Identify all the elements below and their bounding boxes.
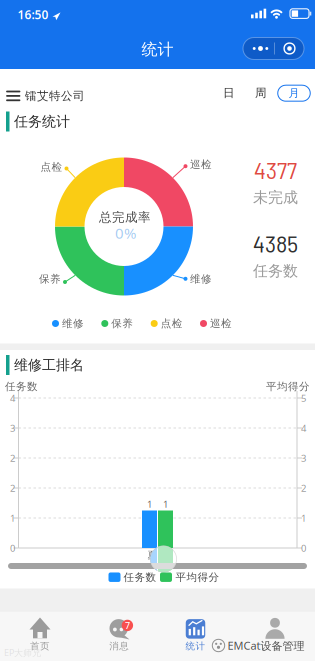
- staticText: EP大师兄: [4, 646, 41, 658]
- staticText: 0: [10, 542, 15, 554]
- staticText: 7: [125, 620, 130, 632]
- staticText: 点检: [40, 161, 62, 173]
- staticText: 巡检: [210, 317, 232, 330]
- staticText: 1: [163, 498, 168, 510]
- staticText: 保养: [39, 273, 61, 285]
- staticText: 未完成: [253, 188, 298, 207]
- staticText: 1: [147, 498, 152, 510]
- staticText: 消息: [109, 640, 129, 652]
- staticText: 0%: [115, 223, 136, 243]
- staticText: 维修: [62, 317, 84, 330]
- staticText: 0: [301, 542, 306, 554]
- staticText: EMCat设备管理: [227, 638, 304, 653]
- staticText: 镭艾特公司: [25, 89, 85, 103]
- staticText: 1: [10, 512, 15, 524]
- staticText: 16:50: [17, 6, 48, 22]
- staticText: 2: [10, 452, 15, 464]
- staticText: 周: [255, 86, 267, 100]
- staticText: 日: [223, 86, 235, 100]
- staticText: 4385: [253, 229, 298, 257]
- staticText: 任务数: [253, 262, 298, 280]
- staticText: 维修: [190, 273, 212, 285]
- staticText: 巡检: [190, 158, 212, 171]
- staticText: 5: [301, 392, 306, 404]
- staticText: 2: [301, 482, 306, 494]
- staticText: 1: [301, 512, 306, 524]
- staticText: 4377: [254, 155, 297, 184]
- staticText: 夏: [147, 549, 157, 561]
- staticText: 任务统计: [14, 113, 70, 130]
- staticText: 点检: [161, 317, 183, 330]
- staticText: 保养: [111, 317, 133, 330]
- staticText: 2: [10, 482, 15, 494]
- staticText: 4: [10, 392, 15, 404]
- staticText: 4: [301, 422, 306, 434]
- staticText: 维修工排名: [14, 356, 84, 374]
- staticText: 首页: [30, 640, 50, 652]
- staticText: 3: [10, 422, 15, 434]
- staticText: 统计: [185, 640, 205, 652]
- staticText: 3: [301, 452, 306, 464]
- staticText: 统计: [141, 39, 173, 59]
- staticText: 平均得分: [266, 380, 310, 393]
- staticText: 平均得分: [175, 571, 219, 584]
- staticText: 任务数: [123, 571, 156, 584]
- staticText: 总完成率: [99, 210, 151, 225]
- staticText: 月: [288, 86, 299, 100]
- staticText: 任务数: [5, 380, 38, 393]
